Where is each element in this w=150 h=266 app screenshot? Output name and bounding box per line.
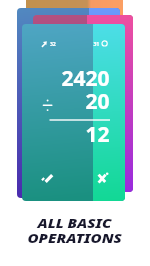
- button[interactable]: [0, 0, 150, 266]
